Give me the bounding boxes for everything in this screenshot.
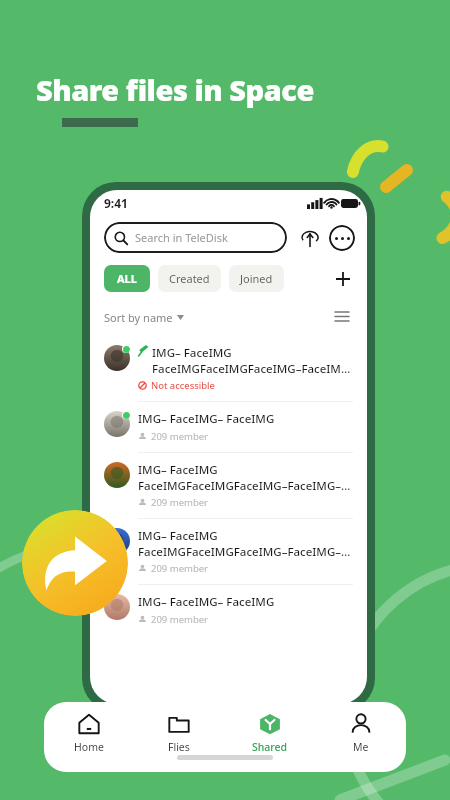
button[interactable]: Sort by name (104, 310, 184, 325)
staticText: Sort by name (104, 310, 173, 325)
staticText: IMG– FaceIMG FaceIMGFaceIMGFaceIMG–FaceI… (138, 462, 353, 493)
staticText: Flies (168, 740, 190, 754)
button[interactable]: IMG– FaceIMG FaceIMGFaceIMGFaceIMG–FaceI… (90, 336, 367, 401)
button[interactable]: Share (22, 510, 128, 616)
button[interactable]: Flies (134, 702, 224, 772)
button[interactable]: IMG– FaceIMG FaceIMGFaceIMGFaceIMG–FaceI… (90, 453, 367, 518)
button[interactable]: IMG– FaceIMG FaceIMGFaceIMGFaceIMG–FaceI… (90, 519, 367, 584)
button[interactable]: List options (331, 306, 353, 328)
button[interactable]: Me (315, 702, 406, 772)
staticText: 209 member (151, 613, 209, 626)
button[interactable]: Created (158, 265, 221, 292)
staticText: 209 member (151, 496, 209, 509)
staticText: Search in TeleDisk (135, 230, 228, 245)
button[interactable]: Search in TeleDisk (104, 222, 287, 253)
staticText: Share files in Space (36, 70, 314, 109)
staticText: Shared (252, 740, 288, 754)
staticText: 9:41 (104, 195, 128, 211)
staticText: IMG– FaceIMG FaceIMGFaceIMGFaceIMG–FaceI… (138, 528, 353, 559)
staticText: Created (169, 271, 210, 286)
staticText: 209 member (151, 562, 209, 575)
button[interactable]: IMG– FaceIMG– FaceIMG (90, 402, 367, 452)
staticText: Joined (240, 271, 273, 286)
button[interactable]: Add (331, 267, 355, 291)
staticText: IMG– FaceIMG– FaceIMG (138, 411, 275, 427)
button[interactable]: More options (329, 225, 355, 251)
staticText: Home (74, 740, 104, 754)
button[interactable]: Shared (224, 702, 315, 772)
staticText: IMG– FaceIMG– FaceIMG (138, 594, 275, 610)
staticText: Not accessible (151, 379, 215, 392)
button[interactable]: ALL (104, 265, 150, 292)
button[interactable]: Home (44, 702, 134, 772)
staticText: IMG– FaceIMG FaceIMGFaceIMGFaceIMG–FaceI… (152, 345, 353, 376)
staticText: Me (353, 740, 369, 754)
button[interactable]: Joined (229, 265, 284, 292)
staticText: ALL (117, 271, 137, 286)
staticText: 209 member (151, 430, 209, 443)
button[interactable]: Sync (297, 225, 323, 251)
button[interactable]: IMG– FaceIMG– FaceIMG (90, 585, 367, 635)
